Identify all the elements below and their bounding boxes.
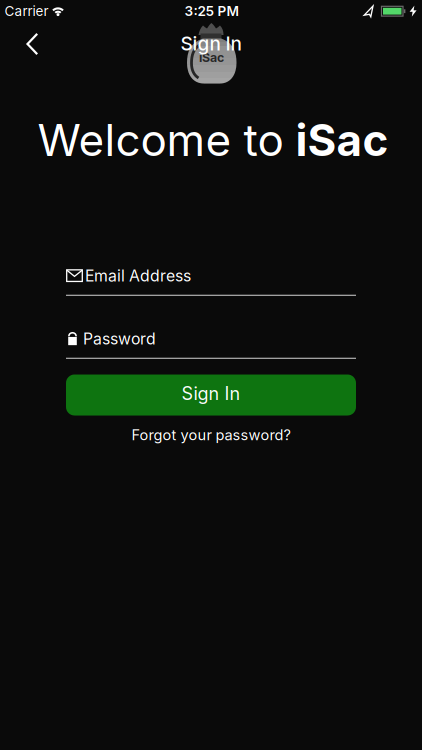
button[interactable]: Forgot your password? (131, 426, 290, 444)
button[interactable]: Email Address (66, 266, 356, 296)
staticText: iSac (295, 113, 388, 167)
staticText: Email Address (85, 266, 191, 285)
staticText: Password (83, 329, 156, 348)
button[interactable]: Password (66, 329, 356, 359)
staticText: 3:25 PM (184, 3, 239, 19)
staticText: Carrier (4, 3, 48, 19)
staticText: Forgot your password? (131, 426, 290, 444)
staticText: Sign In (181, 383, 240, 404)
staticText: iSac (199, 50, 224, 65)
button[interactable]: Back (17, 24, 47, 64)
button[interactable]: Sign In (66, 374, 356, 415)
staticText: Sign In (180, 32, 241, 55)
staticText: Welcome to (37, 113, 295, 167)
